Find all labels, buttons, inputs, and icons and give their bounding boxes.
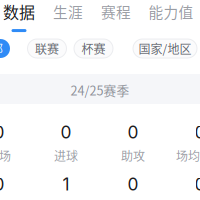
button[interactable]: 赛程 — [86, 1, 146, 31]
staticText: 杯赛 — [81, 40, 105, 57]
staticText: 数据 — [3, 0, 35, 23]
staticText: 0 — [194, 122, 200, 143]
staticText: 场均评分 — [176, 147, 200, 164]
staticText: 出场 — [0, 147, 11, 164]
staticText: 0 — [194, 174, 200, 195]
staticText: 国家/地区 — [138, 40, 191, 57]
staticText: 0 — [127, 122, 138, 143]
staticText: 联赛 — [35, 40, 59, 57]
staticText: 赛程 — [101, 1, 131, 22]
staticText: 能力值 — [148, 1, 193, 22]
staticText: 1 — [62, 174, 69, 195]
button[interactable]: 生涯 — [38, 1, 98, 31]
button[interactable]: 能力值 — [141, 1, 200, 31]
button[interactable]: 数据 — [0, 1, 49, 31]
button[interactable]: 国家/地区 — [133, 39, 197, 58]
staticText: 0 — [127, 174, 138, 195]
button[interactable]: 联赛 — [27, 39, 66, 58]
staticText: 生涯 — [53, 1, 83, 22]
staticText: 24/25赛季 — [70, 81, 129, 99]
staticText: 全部 — [0, 40, 3, 57]
button[interactable]: 全部 — [0, 39, 10, 58]
staticText: 助攻 — [121, 147, 145, 164]
staticText: 0 — [0, 122, 4, 143]
staticText: 进球 — [54, 147, 78, 164]
button[interactable]: 杯赛 — [74, 39, 113, 58]
staticText: 0 — [0, 174, 4, 195]
staticText: 0 — [60, 122, 71, 143]
